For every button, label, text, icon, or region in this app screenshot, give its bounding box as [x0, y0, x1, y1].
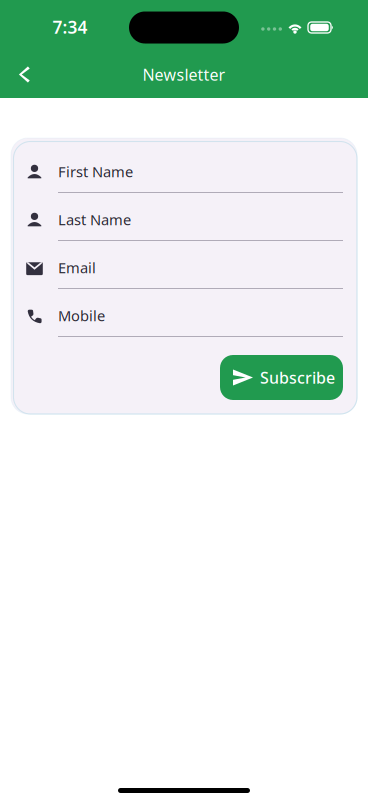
button[interactable]: First Name: [11, 145, 343, 193]
staticText: Last Name: [58, 210, 131, 229]
staticText: Mobile: [58, 306, 105, 325]
staticText: Subscribe: [260, 367, 335, 388]
button[interactable]: Subscribe: [220, 355, 343, 400]
button[interactable]: Last Name: [11, 193, 343, 241]
staticText: 7:34: [52, 15, 87, 38]
button[interactable]: Back: [0, 56, 43, 93]
staticText: Email: [58, 258, 96, 277]
staticText: Newsletter: [142, 64, 225, 85]
staticText: First Name: [58, 162, 133, 181]
button[interactable]: Email: [11, 241, 343, 289]
button[interactable]: Mobile: [11, 289, 343, 337]
